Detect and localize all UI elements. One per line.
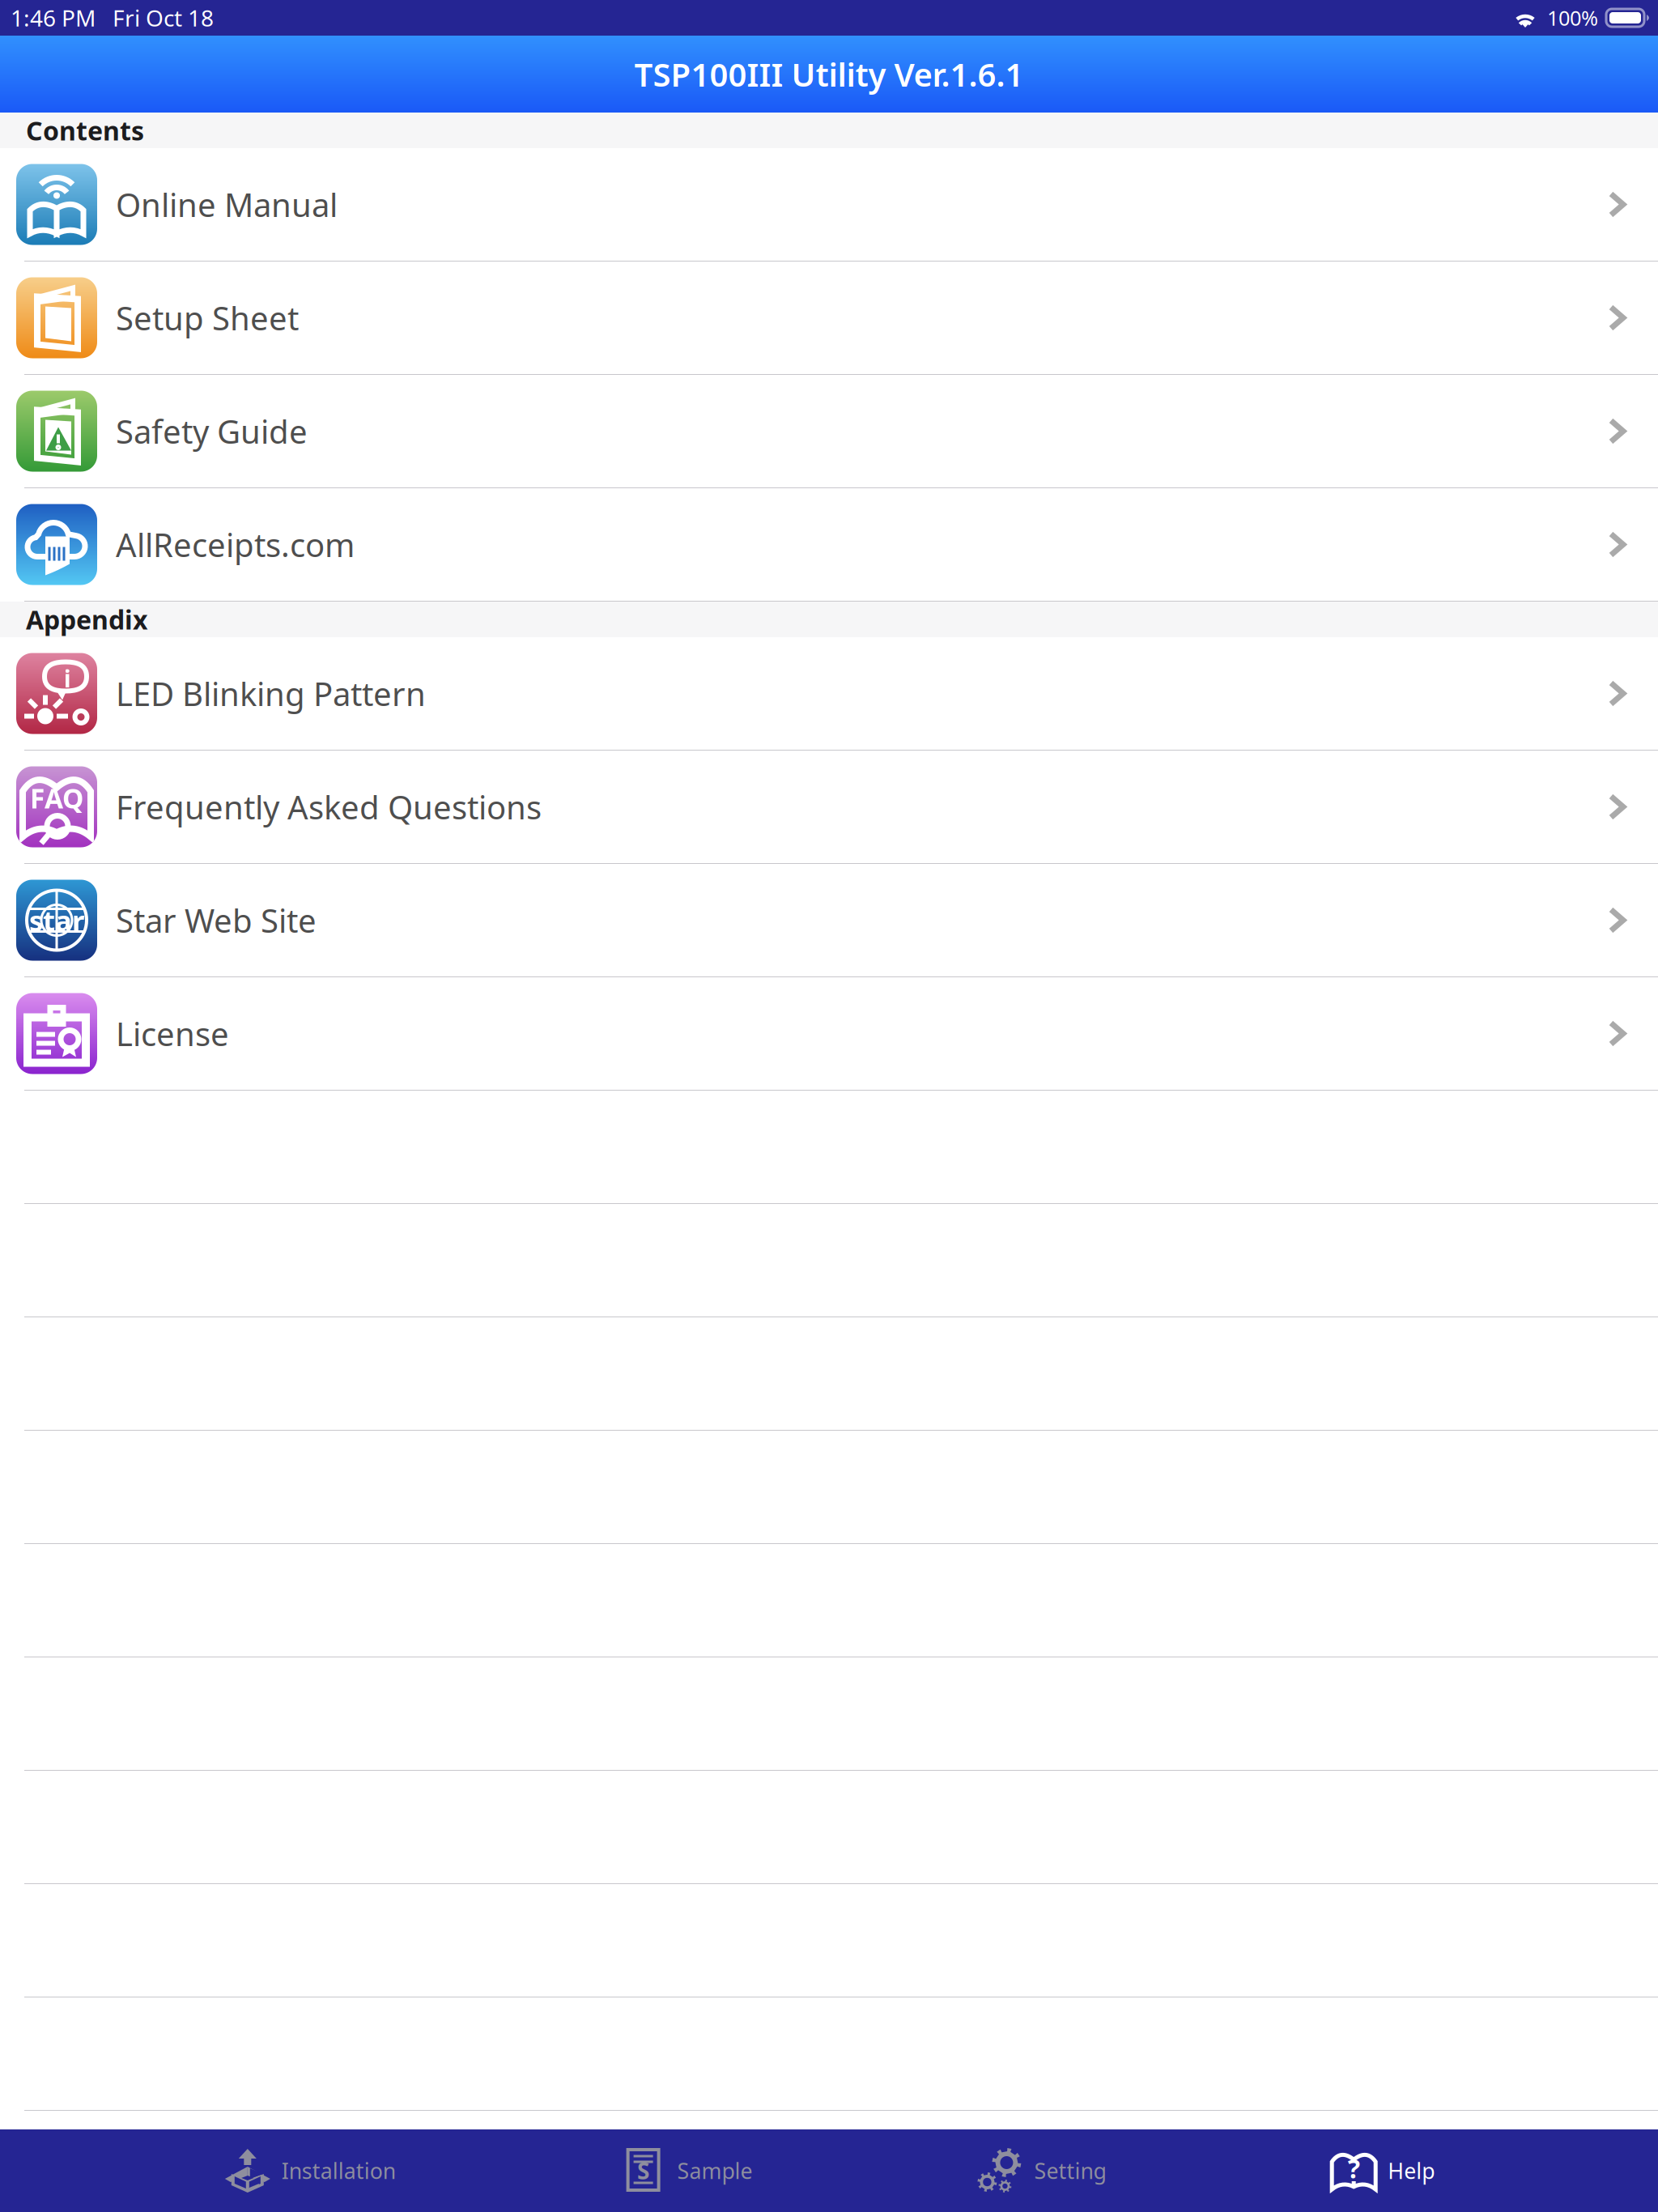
staticText: TSP100III Utility Ver.1.6.1 bbox=[634, 53, 1024, 96]
button[interactable]: Online Manual bbox=[0, 148, 1658, 262]
staticText: License bbox=[116, 1012, 229, 1055]
button[interactable]: License bbox=[0, 977, 1658, 1091]
staticText: Star Web Site bbox=[116, 899, 317, 942]
staticText: Contents bbox=[26, 113, 144, 148]
button[interactable]: FAQ bbox=[0, 751, 1658, 864]
button[interactable]: i bbox=[0, 637, 1658, 751]
staticText: Appendix bbox=[26, 602, 147, 637]
staticText: Setup Sheet bbox=[116, 296, 299, 339]
button[interactable]: Installation bbox=[223, 2129, 396, 2212]
button[interactable]: AllReceipts.com bbox=[0, 488, 1658, 602]
staticText: LED Blinking Pattern bbox=[116, 672, 426, 715]
staticText: 1:46 PM bbox=[11, 3, 96, 33]
staticText: AllReceipts.com bbox=[116, 523, 355, 566]
staticText: FAQ bbox=[30, 780, 83, 816]
button[interactable]: Setup Sheet bbox=[0, 262, 1658, 375]
staticText: Online Manual bbox=[116, 183, 338, 226]
button[interactable]: ? bbox=[1329, 2129, 1435, 2212]
staticText: S bbox=[637, 2156, 649, 2186]
staticText: Sample bbox=[677, 2156, 753, 2185]
staticText: Setting bbox=[1034, 2156, 1106, 2185]
staticText: Installation bbox=[282, 2156, 396, 2185]
staticText: i bbox=[64, 662, 71, 695]
staticText: Fri Oct 18 bbox=[113, 3, 214, 33]
button[interactable]: S bbox=[619, 2129, 753, 2212]
staticText: Safety Guide bbox=[116, 410, 308, 453]
button[interactable]: Setting bbox=[976, 2129, 1106, 2212]
button[interactable]: star bbox=[0, 864, 1658, 977]
staticText: Frequently Asked Questions bbox=[116, 785, 542, 828]
staticText: star bbox=[29, 902, 84, 939]
staticText: 100% bbox=[1547, 4, 1598, 31]
button[interactable]: Safety Guide bbox=[0, 375, 1658, 488]
staticText: ? bbox=[1348, 2151, 1360, 2186]
staticText: Help bbox=[1388, 2156, 1435, 2185]
